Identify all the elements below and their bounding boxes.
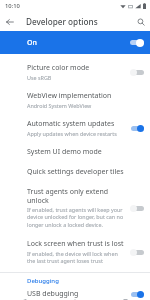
staticText: Automatic system updates xyxy=(27,119,115,129)
button[interactable]: USB debugging xyxy=(130,290,144,298)
button[interactable]: Back xyxy=(0,12,19,31)
staticText: Android System WebView xyxy=(27,102,92,109)
button[interactable]: USB debugging xyxy=(0,289,150,299)
button[interactable]: Picture color mode xyxy=(130,68,144,76)
button[interactable]: WebView implementation xyxy=(0,86,150,114)
button[interactable]: Quick settings developer tiles xyxy=(0,162,150,182)
button[interactable]: Automatic system updates xyxy=(0,114,150,142)
staticText: Use sRGB xyxy=(27,74,52,81)
staticText: Trust agents only extend unlock xyxy=(27,187,127,205)
staticText: USB debugging xyxy=(27,289,130,299)
button[interactable]: Lock screen when trust is lost xyxy=(130,248,144,256)
staticText: Picture color mode xyxy=(27,63,90,73)
button[interactable]: Recent apps xyxy=(100,299,150,300)
button[interactable]: Lock screen when trust is lost xyxy=(0,234,150,270)
staticText: Lock screen when trust is lost xyxy=(27,239,124,249)
staticText: Quick settings developer tiles xyxy=(27,167,124,177)
staticText: WebView implementation xyxy=(27,91,112,101)
staticText: Debugging xyxy=(27,277,59,285)
button[interactable]: Trust agents only extend unlock xyxy=(130,204,144,212)
button[interactable]: Use developer options xyxy=(129,38,144,47)
staticText: Developer options xyxy=(26,16,98,27)
button[interactable]: On xyxy=(0,31,150,54)
staticText: Apply updates when device restarts xyxy=(27,130,117,137)
staticText: 10:10 xyxy=(5,2,20,10)
staticText: If enabled, the device will lock when th… xyxy=(27,250,127,265)
staticText: System UI demo mode xyxy=(27,147,102,157)
button[interactable]: Picture color mode xyxy=(0,58,150,86)
button[interactable]: Home xyxy=(50,299,100,300)
button[interactable]: Search xyxy=(131,12,150,31)
button[interactable]: Trust agents only extend unlock xyxy=(0,182,150,234)
staticText: If enabled, trust agents will keep your … xyxy=(27,206,127,229)
button[interactable]: Back xyxy=(0,299,50,300)
button[interactable]: System UI demo mode xyxy=(0,142,150,162)
button[interactable]: Automatic system updates xyxy=(130,124,144,132)
staticText: On xyxy=(27,38,129,48)
